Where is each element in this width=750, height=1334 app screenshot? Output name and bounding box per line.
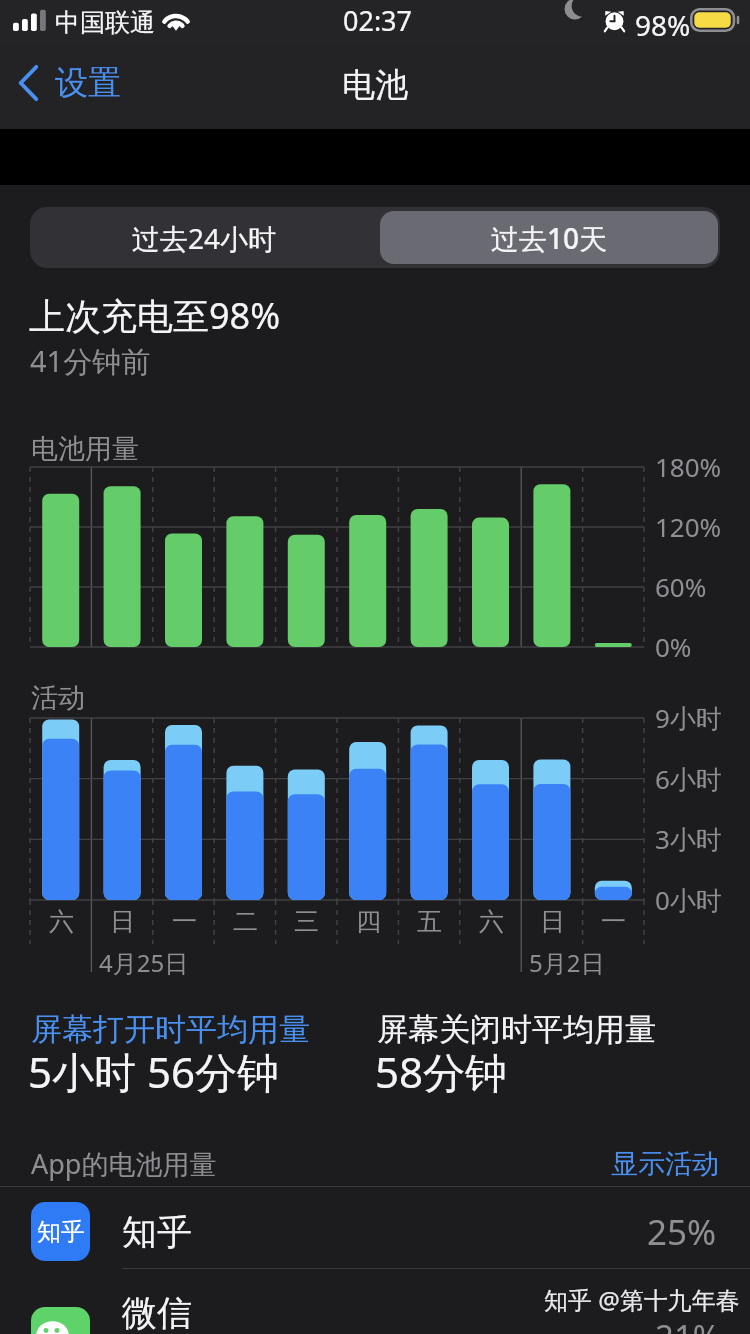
staticText: App的电池用量 xyxy=(31,1145,217,1182)
staticText: 180% xyxy=(655,449,722,484)
staticText: 日 xyxy=(540,906,565,937)
staticText: 知乎 @第十九年春 xyxy=(544,1283,740,1316)
staticText: 屏幕关闭时平均用量 xyxy=(377,1010,656,1049)
button[interactable]: 微信 xyxy=(0,1273,750,1334)
staticText: 21% xyxy=(655,1314,721,1334)
button[interactable]: Back xyxy=(0,56,139,118)
staticText: 三 xyxy=(294,906,319,937)
staticText: 知乎 xyxy=(37,1217,85,1247)
staticText: 60% xyxy=(655,569,707,604)
button[interactable]: 过去24小时 xyxy=(30,207,378,268)
staticText: 0% xyxy=(655,629,692,664)
staticText: 0小时 xyxy=(655,882,722,918)
staticText: 二 xyxy=(233,906,258,937)
staticText: 4月25日 xyxy=(99,946,189,979)
staticText: 一 xyxy=(172,906,197,937)
staticText: 过去10天 xyxy=(491,219,608,257)
button[interactable]: 过去10天 xyxy=(380,211,718,264)
staticText: 41分钟前 xyxy=(30,341,151,381)
button[interactable]: 显示活动 xyxy=(611,1147,750,1181)
staticText: 活动 xyxy=(31,681,85,715)
staticText: 中国联通 xyxy=(55,7,155,38)
staticText: 六 xyxy=(49,906,74,937)
staticText: 6小时 xyxy=(655,761,722,797)
staticText: 电池 xyxy=(342,64,408,106)
staticText: 日 xyxy=(110,906,135,937)
staticText: 微信 xyxy=(122,1291,192,1334)
staticText: 5小时 56分钟 xyxy=(28,1043,279,1100)
button[interactable]: 知乎 xyxy=(0,1191,750,1272)
staticText: 五 xyxy=(417,906,442,937)
staticText: 58分钟 xyxy=(375,1043,508,1100)
staticText: 设置 xyxy=(55,62,121,104)
staticText: 知乎 xyxy=(122,1210,192,1254)
staticText: 120% xyxy=(655,509,722,544)
staticText: 过去24小时 xyxy=(132,219,277,257)
staticText: 9小时 xyxy=(655,700,722,736)
staticText: 98% xyxy=(635,6,691,44)
staticText: 02:37 xyxy=(343,2,413,39)
staticText: 六 xyxy=(479,906,504,937)
staticText: 屏幕打开时平均用量 xyxy=(31,1010,310,1049)
staticText: 显示活动 xyxy=(611,1147,719,1181)
other: Back xyxy=(17,64,40,102)
staticText: 5月2日 xyxy=(529,946,605,979)
staticText: 电池用量 xyxy=(31,432,139,466)
staticText: 上次充电至98% xyxy=(29,291,281,340)
staticText: 一 xyxy=(601,906,626,937)
staticText: 3小时 xyxy=(655,821,722,857)
staticText: 四 xyxy=(356,906,381,937)
staticText: 25% xyxy=(647,1208,717,1256)
